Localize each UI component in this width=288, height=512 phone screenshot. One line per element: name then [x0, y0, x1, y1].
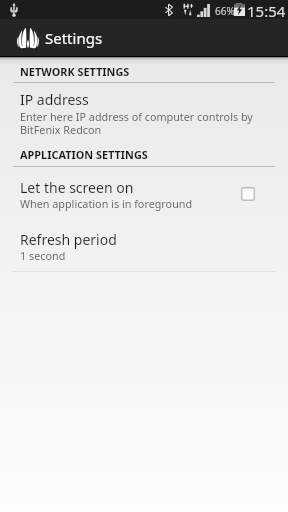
staticText: 1 second — [20, 248, 66, 263]
button[interactable]: Let the screen on checkbox — [241, 187, 255, 201]
staticText: 15:54 — [247, 1, 286, 20]
staticText: NETWORK SETTINGS — [20, 64, 130, 79]
staticText: Let the screen on — [20, 178, 134, 197]
button[interactable] — [0, 227, 288, 271]
staticText: Refresh period — [20, 230, 117, 249]
staticText: 66% — [215, 4, 235, 18]
staticText: BitFenix Redcon — [20, 122, 102, 137]
staticText: IP address — [20, 90, 89, 109]
staticText: APPLICATION SETTINGS — [20, 147, 148, 162]
other: App logo — [18, 27, 38, 48]
staticText: Enter here IP address of computer contro… — [20, 109, 253, 124]
staticText: When application is in foreground — [20, 196, 193, 211]
staticText: Settings — [45, 28, 103, 48]
button[interactable] — [0, 175, 288, 212]
button[interactable] — [0, 87, 288, 135]
